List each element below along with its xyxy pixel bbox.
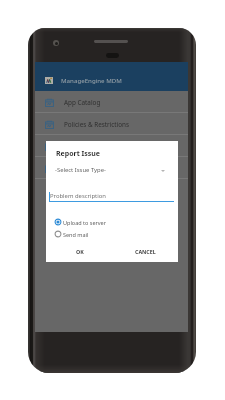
staticText: OK [76,248,84,255]
staticText: Settings [64,164,89,173]
staticText: Policies & Restrictions [64,120,130,129]
button[interactable]: Report Issue [35,135,188,157]
button[interactable]: Upload to server [54,216,106,228]
staticText: Upload to server [63,219,106,226]
button[interactable]: Send mail [54,228,89,240]
button[interactable]: -Select Issue Type- [46,164,178,176]
button[interactable]: Settings [35,157,188,179]
staticText: App Catalog [64,98,101,107]
staticText: Problem description [50,192,106,200]
staticText: Report Issue [56,149,101,159]
staticText: -Select Issue Type- [55,166,106,174]
button[interactable]: OK [68,245,92,258]
staticText: ManageEngine MDM [61,76,122,84]
button[interactable]: CANCEL [133,245,157,258]
button[interactable]: ManageEngine MDM [35,69,188,91]
staticText: CANCEL [135,248,156,255]
staticText: Send mail [63,231,89,238]
button[interactable]: Policies & Restrictions [35,113,188,135]
button[interactable]: App Catalog [35,91,188,113]
